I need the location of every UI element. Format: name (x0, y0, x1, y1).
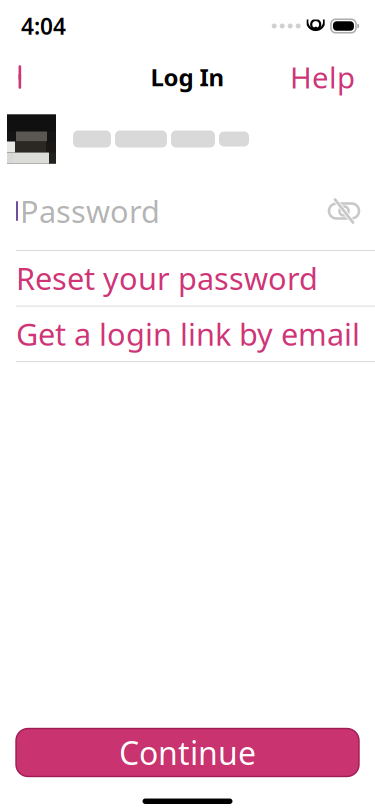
staticText: Help (290, 57, 355, 96)
staticText: Get a login link by email (16, 313, 360, 354)
staticText: Reset your password (16, 258, 318, 298)
button[interactable]: Password (0, 172, 375, 250)
button[interactable]: Get a login link by email (0, 306, 375, 361)
staticText: 4:04 (21, 11, 66, 41)
button[interactable]: Help (280, 55, 365, 99)
staticText: Log In (150, 61, 224, 93)
button[interactable] (0, 106, 375, 172)
staticText: Continue (119, 731, 256, 774)
button[interactable]: Reset your password (0, 251, 375, 306)
staticText: Password (20, 191, 160, 231)
button[interactable]: Back (0, 55, 44, 99)
button[interactable]: Continue (16, 728, 359, 776)
